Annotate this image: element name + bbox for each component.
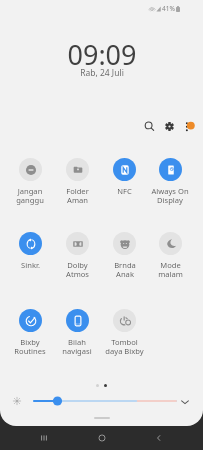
button[interactable]: Settings [160, 117, 178, 135]
button[interactable]: NFC [101, 158, 147, 196]
button[interactable]: Recent apps [30, 426, 58, 450]
staticText: Jangan ganggu [16, 186, 44, 205]
button[interactable]: Bixby Routines [7, 309, 53, 356]
staticText: Sinkr. [21, 260, 40, 270]
staticText: Bixby Routines [14, 337, 46, 356]
button[interactable]: Mode malam [147, 232, 193, 279]
button[interactable]: Home [88, 426, 116, 450]
button[interactable]: Expand quick settings [178, 395, 191, 408]
button[interactable]: Brightness slider [33, 394, 177, 408]
staticText: Rab, 24 Juli [80, 67, 124, 79]
staticText: Dolby Atmos [66, 260, 89, 279]
button[interactable]: More options [180, 117, 198, 135]
button[interactable]: Dolby Atmos [54, 232, 100, 279]
button[interactable]: Back [145, 426, 173, 450]
staticText: Always On Display [151, 186, 189, 205]
button[interactable]: Search [140, 117, 158, 135]
staticText: 41% [162, 4, 175, 13]
staticText: Mode malam [158, 260, 183, 279]
button[interactable]: Jangan ganggu [7, 158, 53, 205]
button[interactable]: Brightness [11, 395, 23, 407]
staticText: Tombol daya Bixby [105, 337, 144, 356]
button[interactable]: Sinkr. [7, 232, 53, 270]
staticText: NFC [117, 186, 132, 196]
button[interactable]: Always On Display [147, 158, 193, 205]
staticText: Folder Aman [66, 186, 89, 205]
staticText: Bilah navigasi [62, 337, 92, 356]
button[interactable]: Folder Aman [54, 158, 100, 205]
button[interactable]: Tombol daya Bixby [101, 309, 147, 356]
button[interactable]: Brnda Anak [101, 232, 147, 279]
staticText: Brnda Anak [114, 260, 136, 279]
staticText: 09:09 [67, 36, 137, 73]
button[interactable]: Bilah navigasi [54, 309, 100, 356]
